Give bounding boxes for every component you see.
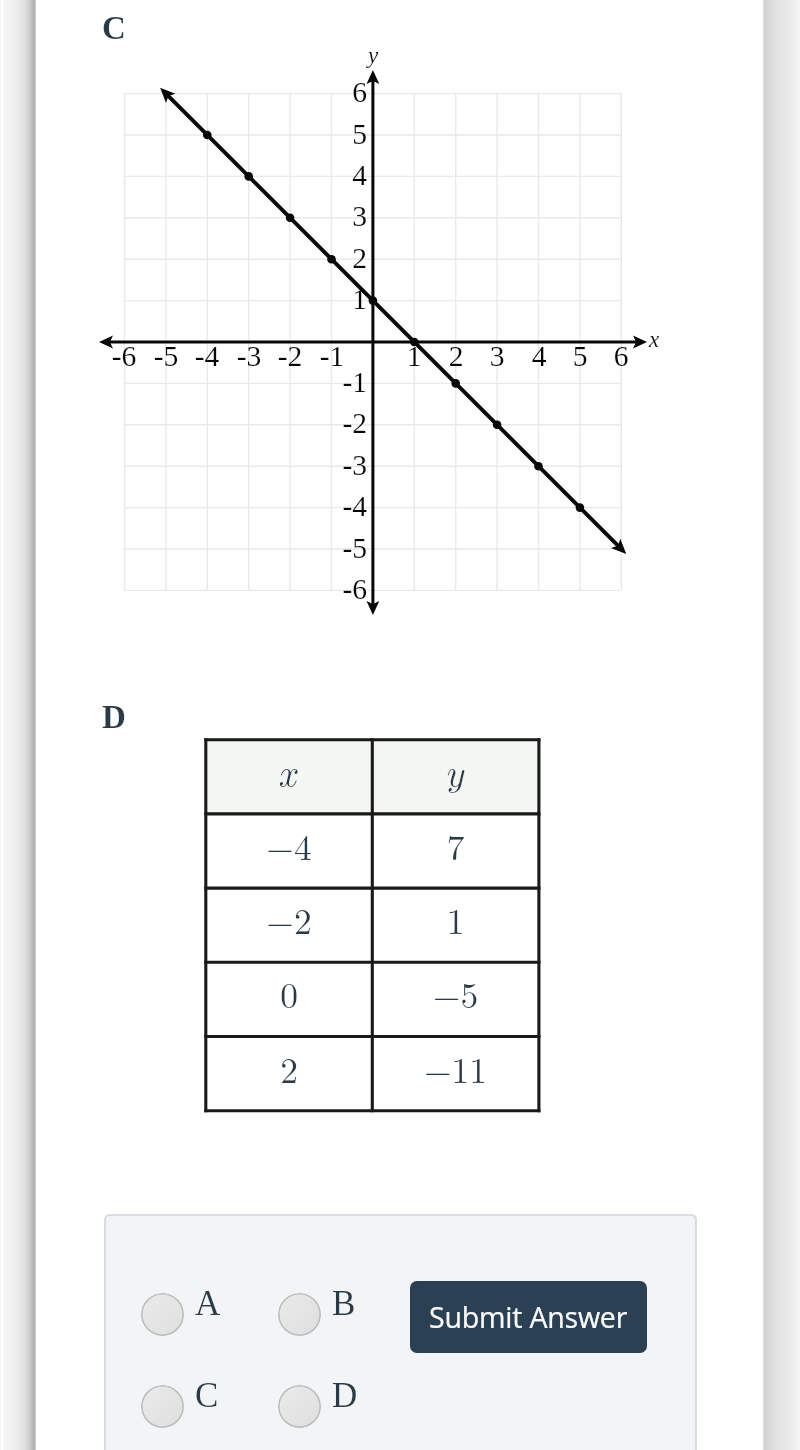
- staticText: 2: [317, 242, 367, 275]
- button[interactable]: Answer option B: [278, 1293, 396, 1337]
- staticText: C: [195, 1376, 219, 1415]
- staticText: 6: [596, 340, 646, 373]
- staticText: -2: [265, 340, 315, 373]
- staticText: -6: [99, 340, 149, 373]
- staticText: 𝑥: [206, 757, 372, 793]
- staticText: 1: [372, 894, 539, 944]
- staticText: y: [368, 43, 379, 68]
- staticText: Submit Answer: [429, 1298, 628, 1337]
- staticText: −4: [206, 820, 372, 870]
- button[interactable]: Answer option D: [278, 1385, 396, 1429]
- staticText: 3: [317, 200, 367, 233]
- staticText: D: [332, 1376, 358, 1415]
- staticText: C: [102, 10, 126, 47]
- staticText: 1: [389, 340, 439, 373]
- staticText: D: [102, 699, 126, 736]
- staticText: -5: [141, 340, 191, 373]
- staticText: −2: [206, 894, 372, 944]
- staticText: -4: [317, 490, 367, 523]
- staticText: -5: [317, 532, 367, 565]
- staticText: 4: [317, 159, 367, 192]
- button[interactable]: Answer option C: [141, 1385, 259, 1429]
- button[interactable]: Submit Answer: [410, 1281, 647, 1353]
- staticText: 𝑦: [372, 757, 539, 793]
- staticText: -1: [317, 366, 367, 399]
- staticText: -3: [317, 449, 367, 482]
- staticText: B: [332, 1284, 356, 1323]
- staticText: A: [195, 1284, 221, 1323]
- staticText: −11: [372, 1043, 539, 1093]
- staticText: 7: [372, 820, 539, 870]
- staticText: −5: [372, 968, 539, 1018]
- staticText: -2: [317, 407, 367, 440]
- staticText: 4: [514, 340, 564, 373]
- staticText: 5: [317, 118, 367, 151]
- staticText: -4: [182, 340, 232, 373]
- staticText: -1: [307, 340, 357, 373]
- button[interactable]: Answer option A: [141, 1293, 259, 1337]
- staticText: 2: [206, 1043, 372, 1093]
- staticText: -3: [224, 340, 274, 373]
- staticText: -6: [317, 573, 367, 606]
- staticText: 6: [317, 76, 367, 109]
- staticText: 0: [206, 968, 372, 1018]
- staticText: 3: [472, 340, 522, 373]
- staticText: 1: [317, 283, 367, 316]
- staticText: 2: [431, 340, 481, 373]
- staticText: x: [649, 327, 660, 352]
- staticText: 5: [555, 340, 605, 373]
